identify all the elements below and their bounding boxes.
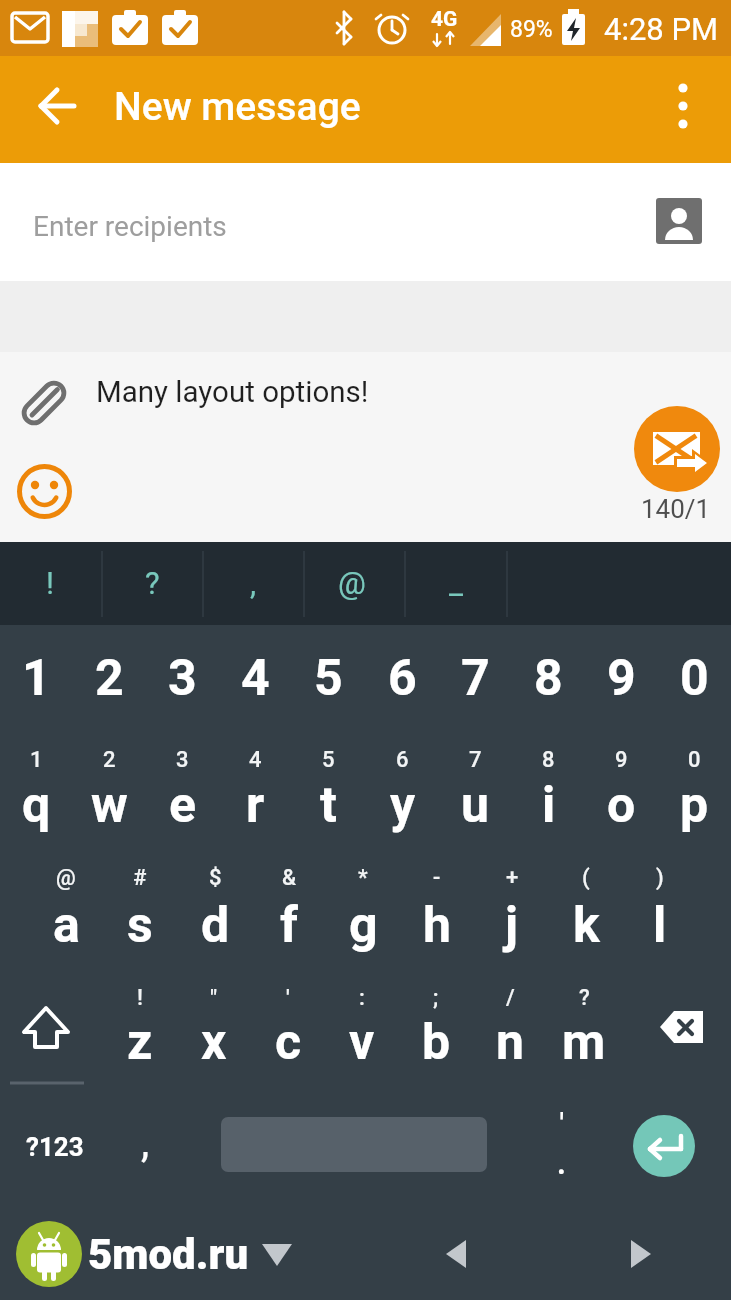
staticText: 3 [176,747,189,773]
staticText: g [349,896,378,955]
button[interactable]: t [292,765,365,845]
button[interactable] [646,188,712,254]
button[interactable]: b [399,1002,473,1082]
staticText: 89% [510,16,553,43]
button[interactable]: z [103,1002,177,1082]
button[interactable]: a [29,885,103,965]
button[interactable]: d [178,885,252,965]
staticText: ! [137,985,143,1011]
staticText: ; [433,985,439,1011]
staticText: ) [656,865,664,891]
staticText: k [573,896,600,955]
button[interactable]: @ [302,553,402,613]
button[interactable]: ?123 [15,1122,95,1172]
staticText: 1 [22,649,51,708]
button[interactable]: m [547,1002,621,1082]
staticText: h [423,896,452,955]
button[interactable]: j [475,885,549,965]
button[interactable] [250,1230,306,1280]
button[interactable]: k [549,885,623,965]
staticText: 1 [30,747,43,773]
button[interactable] [630,1112,700,1182]
button[interactable]: 3 [146,638,219,718]
button[interactable]: g [326,885,400,965]
button[interactable]: 2 [73,638,146,718]
staticText: w [91,776,128,835]
staticText: : [359,985,365,1011]
button[interactable]: 8 [512,638,585,718]
button[interactable]: ? [102,553,202,613]
button[interactable]: ! [0,553,100,613]
button[interactable]: l [623,885,697,965]
staticText: z [127,1013,153,1072]
staticText: * [358,865,368,891]
staticText: 2 [95,649,124,708]
staticText: ?123 [26,1132,84,1162]
button[interactable] [10,995,90,1070]
staticText: 5 [314,649,343,708]
button[interactable]: w [73,765,146,845]
button[interactable] [655,75,715,139]
staticText: e [169,776,197,835]
button[interactable] [430,1230,486,1280]
staticText: / [506,985,515,1011]
button[interactable] [30,80,86,134]
staticText: b [422,1013,451,1072]
button[interactable]: y [366,765,439,845]
button[interactable]: v [325,1002,399,1082]
button[interactable]: q [0,765,73,845]
staticText: @ [338,565,366,601]
button[interactable]: r [219,765,292,845]
button[interactable]: 4 [219,638,292,718]
staticText: ' [559,1105,565,1143]
button[interactable] [648,995,720,1060]
staticText: 7 [469,747,482,773]
staticText: u [461,776,490,835]
button[interactable]: x [177,1002,251,1082]
button[interactable] [221,1117,487,1173]
button[interactable] [14,372,76,434]
staticText: t [320,776,337,835]
button[interactable]: c [251,1002,325,1082]
button[interactable] [615,1230,671,1280]
button[interactable]: s [103,885,177,965]
button[interactable]: e [146,765,219,845]
staticText: y [390,776,416,835]
staticText: a [53,896,80,955]
button[interactable]: _ [406,553,506,613]
button[interactable]: u [439,765,512,845]
button[interactable]: p [658,765,731,845]
staticText: @ [56,865,76,891]
button[interactable] [14,460,76,522]
button[interactable]: 7 [439,638,512,718]
staticText: n [496,1013,525,1072]
button[interactable]: h [400,885,474,965]
staticText: 3 [168,649,197,708]
button[interactable]: f [252,885,326,965]
button[interactable] [632,404,724,496]
button[interactable]: o [585,765,658,845]
staticText: 6 [396,747,409,773]
staticText: ( [582,865,590,891]
staticText: Many layout options! [96,375,369,410]
staticText: x [201,1013,227,1072]
staticText: 0 [688,747,701,773]
staticText: 5mod.ru [88,1230,249,1279]
staticText: 5 [322,747,335,773]
button[interactable]: 9 [585,638,658,718]
button[interactable]: 6 [366,638,439,718]
staticText: f [280,896,298,955]
button[interactable]: 0 [658,638,731,718]
staticText: New message [114,84,361,130]
staticText: ? [579,985,590,1011]
button[interactable]: 5 [292,638,365,718]
staticText: q [22,776,51,835]
button[interactable]: , [203,553,303,613]
button[interactable]: 1 [0,638,73,718]
staticText: 8 [534,649,563,708]
button[interactable]: i [512,765,585,845]
button[interactable]: n [473,1002,547,1082]
staticText: ' [286,985,290,1011]
button[interactable]: , [110,1112,180,1172]
staticText: 7 [461,649,490,708]
